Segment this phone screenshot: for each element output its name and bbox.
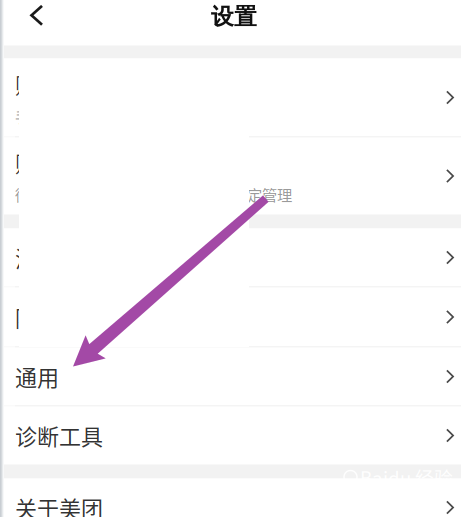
- staticText: 账号绑定: [15, 146, 103, 178]
- staticText: 手机号、密码、注销账号: [15, 105, 180, 127]
- button[interactable]: 账号绑定: [0, 137, 461, 214]
- button[interactable]: 账号与安全: [0, 58, 461, 136]
- staticText: 账号与安全: [15, 68, 125, 100]
- button[interactable]: 隐私设置: [0, 287, 461, 346]
- button[interactable]: 关于美团: [0, 478, 461, 517]
- staticText: 通用: [15, 361, 59, 392]
- staticText: 设置: [211, 2, 257, 31]
- staticText: 诊断工具: [15, 420, 103, 451]
- staticText: 隐私设置: [15, 301, 103, 333]
- button[interactable]: 通用: [0, 347, 461, 405]
- button[interactable]: 消息设置: [0, 228, 461, 286]
- staticText: 关于美团: [15, 492, 103, 517]
- staticText: Baidu 经验: [360, 463, 453, 490]
- staticText: 消息设置: [15, 242, 103, 273]
- button[interactable]: Back: [0, 0, 90, 39]
- button[interactable]: 诊断工具: [0, 406, 461, 464]
- staticText: 微信、QQ、微博等第三方账号的绑定管理: [15, 183, 292, 205]
